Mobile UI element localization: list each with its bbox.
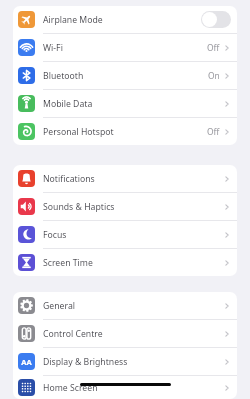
staticText: Off (207, 126, 220, 137)
button[interactable]: Notifications (13, 165, 237, 192)
button[interactable]: Focus (13, 221, 237, 248)
button[interactable]: Control Centre (13, 320, 237, 347)
staticText: Screen Time (43, 257, 223, 269)
button[interactable]: Mobile Data (13, 90, 237, 117)
staticText: On (208, 70, 220, 81)
staticText: Focus (43, 229, 223, 241)
staticText: Mobile Data (43, 98, 223, 110)
button[interactable]: Sounds & Haptics (13, 193, 237, 220)
staticText: Off (207, 42, 220, 53)
button[interactable]: Wi-Fi (13, 34, 237, 61)
button[interactable]: AA (13, 348, 237, 375)
button[interactable]: Bluetooth (13, 62, 237, 89)
staticText: AA (21, 357, 32, 367)
button[interactable]: Personal Hotspot (13, 118, 237, 145)
button[interactable]: Home Screen (13, 376, 237, 399)
staticText: Display & Brightness (43, 356, 223, 368)
staticText: Control Centre (43, 328, 223, 340)
button[interactable]: Airplane Mode (13, 6, 237, 33)
staticText: Sounds & Haptics (43, 201, 223, 213)
staticText: Notifications (43, 173, 223, 185)
button[interactable]: Screen Time (13, 249, 237, 276)
staticText: General (43, 300, 223, 312)
staticText: Wi-Fi (43, 42, 207, 54)
button[interactable]: Toggle Airplane Mode (201, 11, 231, 28)
staticText: Personal Hotspot (43, 126, 207, 138)
button[interactable]: General (13, 292, 237, 319)
staticText: Airplane Mode (43, 14, 201, 26)
staticText: Bluetooth (43, 70, 208, 82)
staticText: Home Screen (43, 382, 223, 394)
